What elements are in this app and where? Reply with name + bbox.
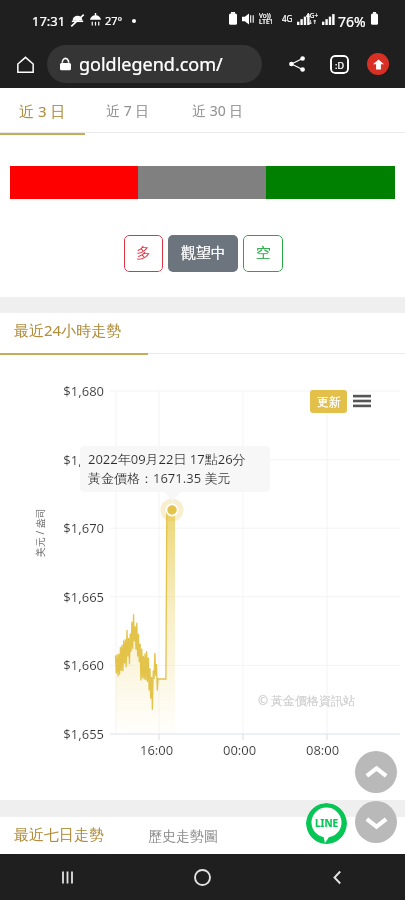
staticText: $1,655 [51, 725, 104, 743]
staticText: $1,675 [51, 451, 104, 469]
button[interactable]: 空 [243, 235, 283, 272]
button[interactable]: Back [270, 854, 405, 900]
staticText: ↓↑ [308, 19, 318, 25]
button[interactable]: Tabs [322, 47, 356, 81]
staticText: 美元 / 盎司 [33, 508, 47, 557]
button[interactable]: Scroll to top [355, 751, 397, 793]
button[interactable]: 最近24小時走勢 [14, 320, 122, 340]
staticText: $1,660 [51, 656, 104, 674]
button[interactable]: Share [280, 47, 314, 81]
staticText: 00:00 [223, 741, 257, 759]
staticText: 更新 [317, 394, 341, 409]
button[interactable]: 多 [124, 235, 163, 272]
staticText: 27° [105, 13, 123, 28]
staticText: 17:31 [32, 12, 66, 30]
staticText: © 黃金價格資訊站 [258, 692, 356, 708]
staticText: 多 [136, 244, 151, 263]
button[interactable]: 最近七日走勢 [14, 826, 104, 845]
staticText: 近 3 日 [19, 101, 66, 121]
staticText: 黃金價格：1671.35 美元 [88, 469, 231, 487]
staticText: 16:00 [140, 741, 174, 759]
button[interactable]: Share on LINE [306, 803, 347, 844]
staticText: goldlegend.com/ [79, 52, 223, 77]
staticText: 觀望中 [181, 244, 226, 263]
staticText: $1,670 [51, 519, 104, 537]
button[interactable]: 觀望中 [168, 235, 238, 272]
button[interactable]: 更新 [310, 390, 347, 413]
staticText: 2022年09月22日 17點26分 [88, 450, 246, 468]
staticText: 最近七日走勢 [14, 826, 104, 845]
button[interactable]: 近 7 日 [85, 88, 170, 133]
staticText: 最近24小時走勢 [14, 320, 122, 340]
staticText: $1,680 [51, 382, 104, 400]
button[interactable]: Home [135, 854, 270, 900]
staticText: LINE [315, 816, 339, 830]
button[interactable]: Account [361, 47, 395, 81]
button[interactable]: Scroll to bottom [355, 801, 397, 843]
button[interactable]: Chart menu [352, 391, 372, 411]
button[interactable]: 近 30 日 [170, 88, 265, 133]
staticText: 近 30 日 [192, 101, 244, 120]
button[interactable]: goldlegend.com/ [47, 45, 262, 83]
staticText: 4G+ [306, 11, 319, 20]
button[interactable]: 歷史走勢圖 [148, 828, 218, 846]
staticText: 空 [256, 244, 271, 263]
staticText: :D [335, 59, 344, 71]
staticText: 76% [338, 12, 366, 31]
staticText: 歷史走勢圖 [148, 828, 218, 846]
staticText: $1,665 [51, 588, 104, 606]
staticText: 近 7 日 [106, 101, 150, 120]
staticText: 08:00 [306, 741, 340, 759]
staticText: 4G [282, 13, 293, 24]
button[interactable]: 近 3 日 [0, 88, 85, 133]
button[interactable]: Home [8, 47, 42, 81]
button[interactable]: Recent apps [0, 854, 135, 900]
staticText: Vo)) LTE1 [259, 11, 274, 26]
